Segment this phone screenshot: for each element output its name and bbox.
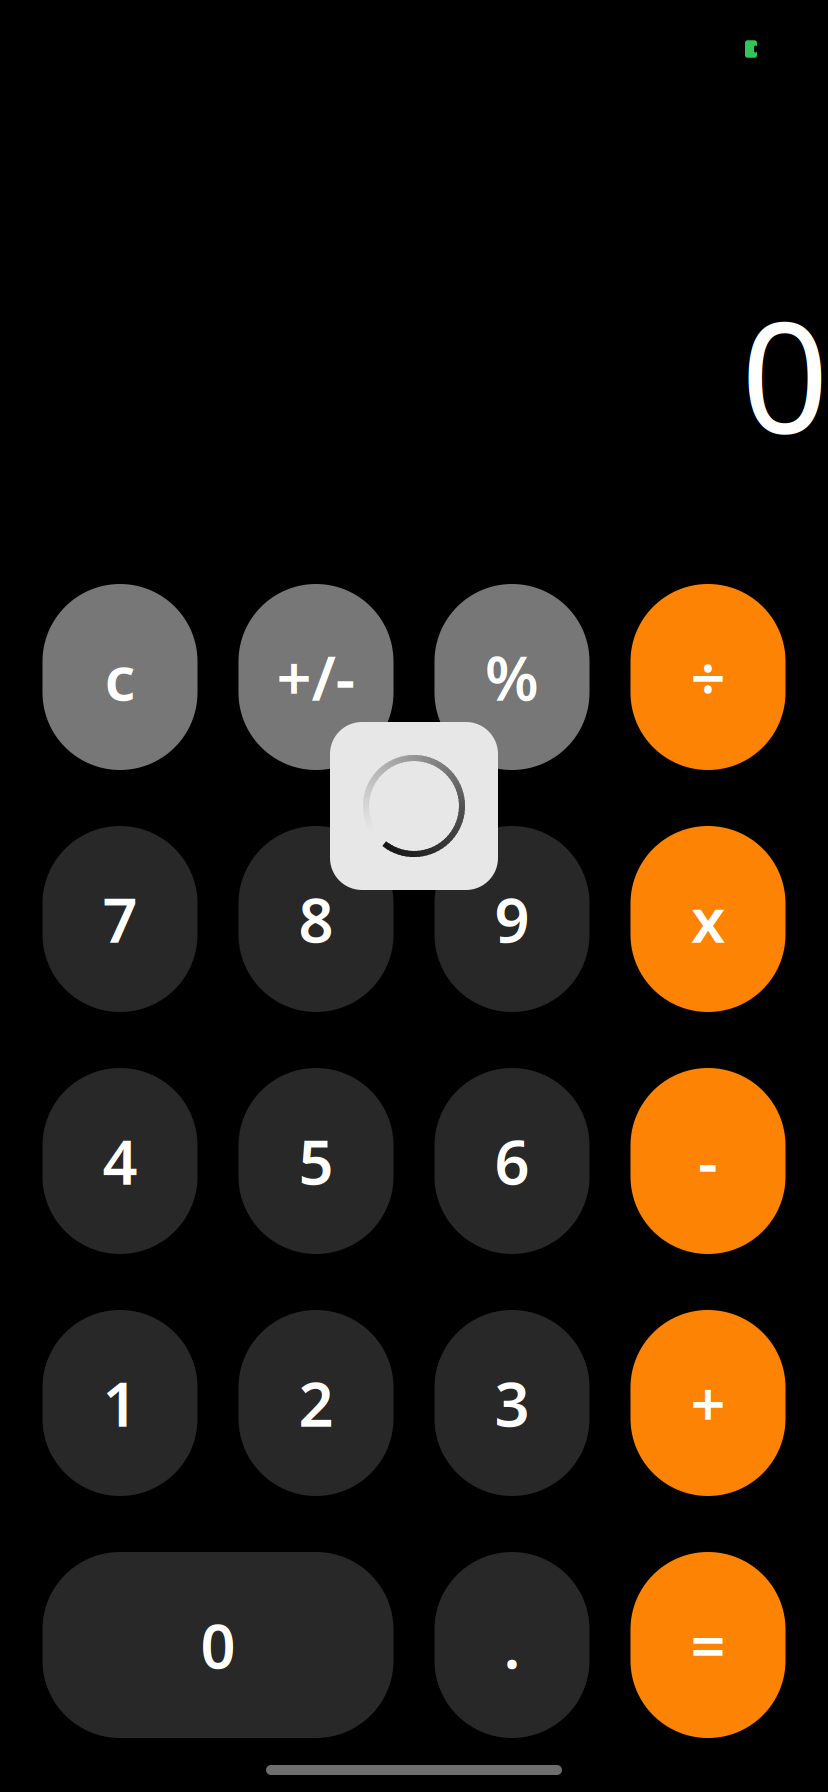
staticText: 9 (494, 878, 529, 960)
button[interactable]: + (630, 1310, 785, 1496)
button[interactable]: - (630, 1068, 785, 1254)
staticText: 4 (102, 1120, 137, 1202)
button[interactable]: 5 (238, 1068, 393, 1254)
staticText: 0 (200, 1604, 235, 1686)
button[interactable]: % (434, 584, 589, 770)
button[interactable]: 6 (434, 1068, 589, 1254)
button[interactable]: +/- (238, 584, 393, 770)
button[interactable]: c (42, 584, 197, 770)
staticText: . (503, 1604, 520, 1686)
staticText: 1 (102, 1362, 137, 1444)
staticText: = (690, 1604, 725, 1686)
button[interactable]: . (434, 1552, 589, 1738)
button[interactable]: = (630, 1552, 785, 1738)
button[interactable]: 3 (434, 1310, 589, 1496)
staticText: + (690, 1362, 725, 1444)
staticText: 2 (298, 1362, 333, 1444)
staticText: % (485, 636, 539, 718)
button[interactable]: 7 (42, 826, 197, 1012)
staticText: 8 (298, 878, 333, 960)
staticText: 7 (102, 878, 137, 960)
staticText: ÷ (690, 636, 725, 718)
button[interactable]: 9 (434, 826, 589, 1012)
staticText: 3 (494, 1362, 529, 1444)
button[interactable]: 0 (42, 1552, 393, 1738)
button[interactable]: 8 (238, 826, 393, 1012)
staticText: 5 (298, 1120, 333, 1202)
staticText: x (691, 878, 725, 960)
staticText: c (104, 636, 135, 718)
staticText: 6 (494, 1120, 529, 1202)
button[interactable]: 2 (238, 1310, 393, 1496)
button[interactable]: ÷ (630, 584, 785, 770)
staticText: - (698, 1120, 718, 1202)
button[interactable]: 4 (42, 1068, 197, 1254)
staticText: 0 (741, 271, 828, 475)
button[interactable]: x (630, 826, 785, 1012)
staticText: +/- (276, 636, 355, 718)
button[interactable]: 1 (42, 1310, 197, 1496)
